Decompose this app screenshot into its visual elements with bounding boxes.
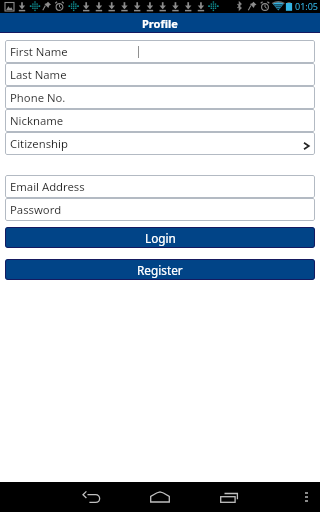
- button[interactable]: Login: [5, 227, 315, 248]
- button[interactable]: Last Name: [5, 63, 315, 86]
- staticText: First Name: [10, 44, 68, 59]
- staticText: Profile: [142, 16, 178, 31]
- button[interactable]: Back: [72, 482, 112, 512]
- staticText: Login: [145, 230, 176, 246]
- staticText: Phone No.: [10, 90, 66, 105]
- button[interactable]: Password: [5, 198, 315, 221]
- staticText: Last Name: [10, 67, 67, 82]
- button[interactable]: More options: [296, 487, 316, 507]
- staticText: Nickname: [10, 113, 64, 128]
- staticText: Email Address: [10, 179, 85, 194]
- staticText: 01:05: [295, 0, 319, 12]
- button[interactable]: Phone No.: [5, 86, 315, 109]
- button[interactable]: Email Address: [5, 175, 315, 198]
- button[interactable]: First Name: [5, 40, 315, 63]
- button[interactable]: Citizenship: [5, 132, 315, 155]
- button[interactable]: Recent apps: [209, 482, 249, 512]
- staticText: Register: [137, 262, 183, 278]
- button[interactable]: Nickname: [5, 109, 315, 132]
- button[interactable]: Register: [5, 259, 315, 280]
- staticText: Citizenship: [10, 136, 68, 151]
- button[interactable]: Home: [140, 482, 180, 512]
- staticText: Password: [10, 202, 62, 217]
